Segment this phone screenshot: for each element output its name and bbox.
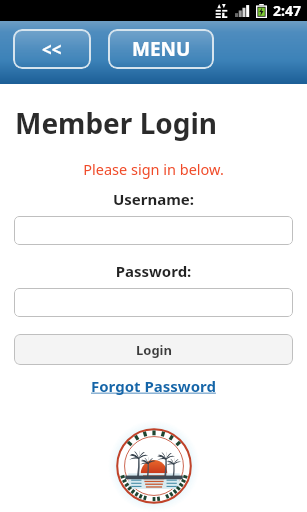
button[interactable]: MENU xyxy=(108,29,214,69)
staticText: Password: xyxy=(0,261,307,281)
button[interactable]: Back xyxy=(13,29,91,69)
staticText: Forgot Password xyxy=(91,376,216,396)
staticText: 2:47 xyxy=(273,1,301,20)
staticText: << xyxy=(42,38,62,61)
button[interactable]: Login xyxy=(14,334,293,365)
button[interactable]: Text input xyxy=(14,216,293,245)
staticText: Please sign in below. xyxy=(0,159,307,179)
staticText: Member Login xyxy=(15,104,218,142)
staticText: Username: xyxy=(0,189,307,209)
staticText: Login xyxy=(136,341,172,359)
button[interactable]: Text input xyxy=(14,288,293,317)
staticText: MENU xyxy=(132,36,191,62)
button[interactable]: Forgot Password xyxy=(0,376,307,396)
